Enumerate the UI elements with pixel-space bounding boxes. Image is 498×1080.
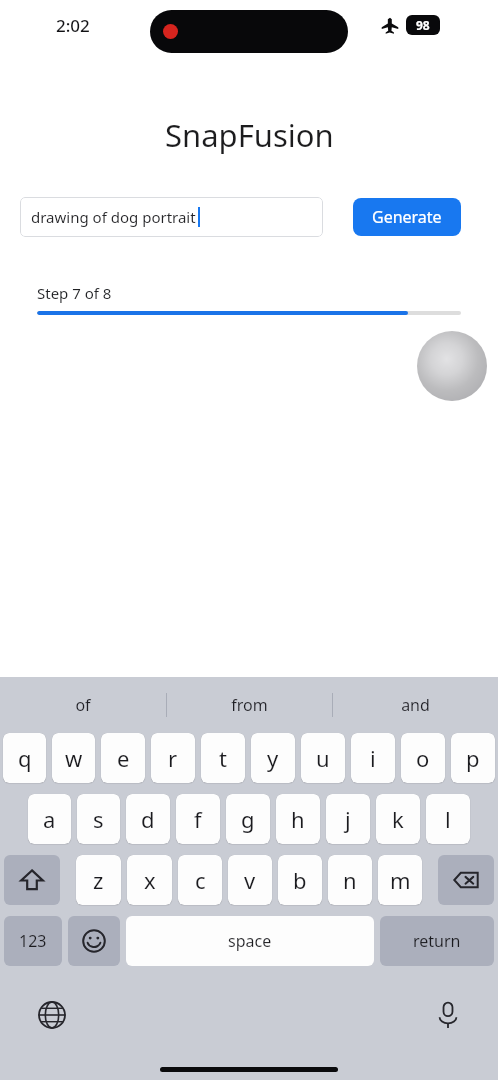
button[interactable]: return [380,916,494,966]
staticText: g [241,804,255,834]
button[interactable]: from [167,677,332,733]
button[interactable]: w [52,733,95,783]
button[interactable]: x [127,855,172,905]
staticText: f [194,804,202,834]
staticText: 2:02 [56,14,90,37]
button[interactable]: of [0,677,166,733]
button[interactable]: t [201,733,245,783]
staticText: k [392,804,404,834]
button[interactable]: a [28,794,71,844]
button[interactable]: r [151,733,195,783]
button[interactable]: y [251,733,295,783]
button[interactable]: k [376,794,420,844]
staticText: Generate [372,206,442,228]
button[interactable]: n [328,855,372,905]
staticText: SnapFusion [165,114,334,156]
button[interactable]: and [333,677,498,733]
button[interactable]: c [178,855,222,905]
staticText: 98 [416,17,430,33]
button[interactable]: z [76,855,121,905]
button[interactable]: Backspace [438,855,494,905]
staticText: space [228,930,272,952]
staticText: b [293,865,307,895]
button[interactable]: g [226,794,270,844]
staticText: from [231,694,268,716]
button[interactable]: Change keyboard language [30,993,74,1037]
staticText: r [168,743,178,773]
staticText: w [65,743,83,773]
staticText: return [413,930,461,952]
staticText: Step 7 of 8 [37,283,112,303]
staticText: s [93,804,104,834]
staticText: y [267,743,279,773]
staticText: p [466,743,480,773]
button[interactable]: l [426,794,470,844]
staticText: x [144,865,156,895]
button[interactable]: b [278,855,322,905]
button[interactable]: Generate [353,198,461,236]
staticText: h [291,804,305,834]
button[interactable]: h [276,794,320,844]
staticText: drawing of dog portrait [31,207,196,227]
staticText: c [195,865,206,895]
staticText: e [117,743,130,773]
button[interactable]: e [101,733,145,783]
button[interactable]: drawing of dog portrait [20,197,323,237]
button[interactable]: d [126,794,170,844]
button[interactable]: Dictation [426,993,470,1037]
staticText: of [75,694,91,716]
button[interactable]: Emoji [68,916,120,966]
button[interactable]: m [378,855,422,905]
button[interactable]: 123 [4,916,62,966]
button[interactable]: f [176,794,220,844]
button[interactable]: p [451,733,495,783]
staticText: n [343,865,357,895]
staticText: and [401,694,430,716]
button[interactable]: o [401,733,445,783]
staticText: v [244,865,256,895]
button[interactable]: s [77,794,120,844]
button[interactable]: u [301,733,345,783]
staticText: a [43,804,56,834]
button[interactable]: space [126,916,374,966]
staticText: q [18,743,32,773]
staticText: l [445,804,451,834]
button[interactable]: v [228,855,272,905]
staticText: o [416,743,430,773]
staticText: d [141,804,155,834]
button[interactable]: Shift [4,855,60,905]
staticText: t [219,743,227,773]
staticText: u [316,743,330,773]
staticText: m [390,865,411,895]
staticText: 123 [19,930,47,952]
button[interactable]: i [351,733,395,783]
staticText: j [345,804,351,834]
button[interactable]: q [3,733,46,783]
staticText: z [93,865,104,895]
button[interactable]: j [326,794,370,844]
staticText: i [370,743,376,773]
